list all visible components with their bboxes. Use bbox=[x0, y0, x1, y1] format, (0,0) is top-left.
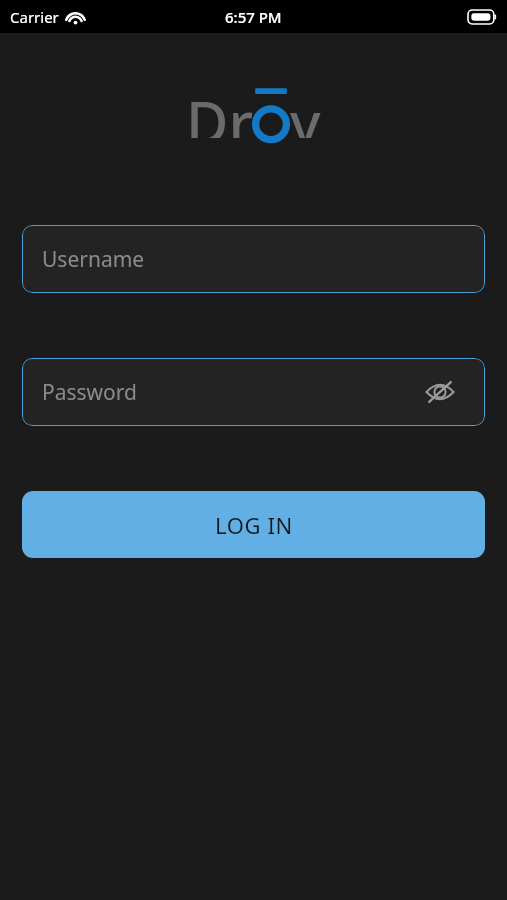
button[interactable]: LOG IN bbox=[22, 491, 485, 558]
staticText: Username bbox=[42, 245, 145, 274]
staticText: 6:57 PM bbox=[225, 7, 282, 27]
button[interactable]: Show password bbox=[423, 375, 457, 409]
staticText: Carrier bbox=[10, 7, 59, 27]
staticText: LOG IN bbox=[215, 510, 293, 540]
staticText: v bbox=[290, 82, 321, 138]
button[interactable]: Password bbox=[22, 358, 485, 426]
staticText: Password bbox=[42, 378, 137, 407]
button[interactable]: Username bbox=[22, 225, 485, 293]
staticText: Dr bbox=[186, 82, 253, 138]
